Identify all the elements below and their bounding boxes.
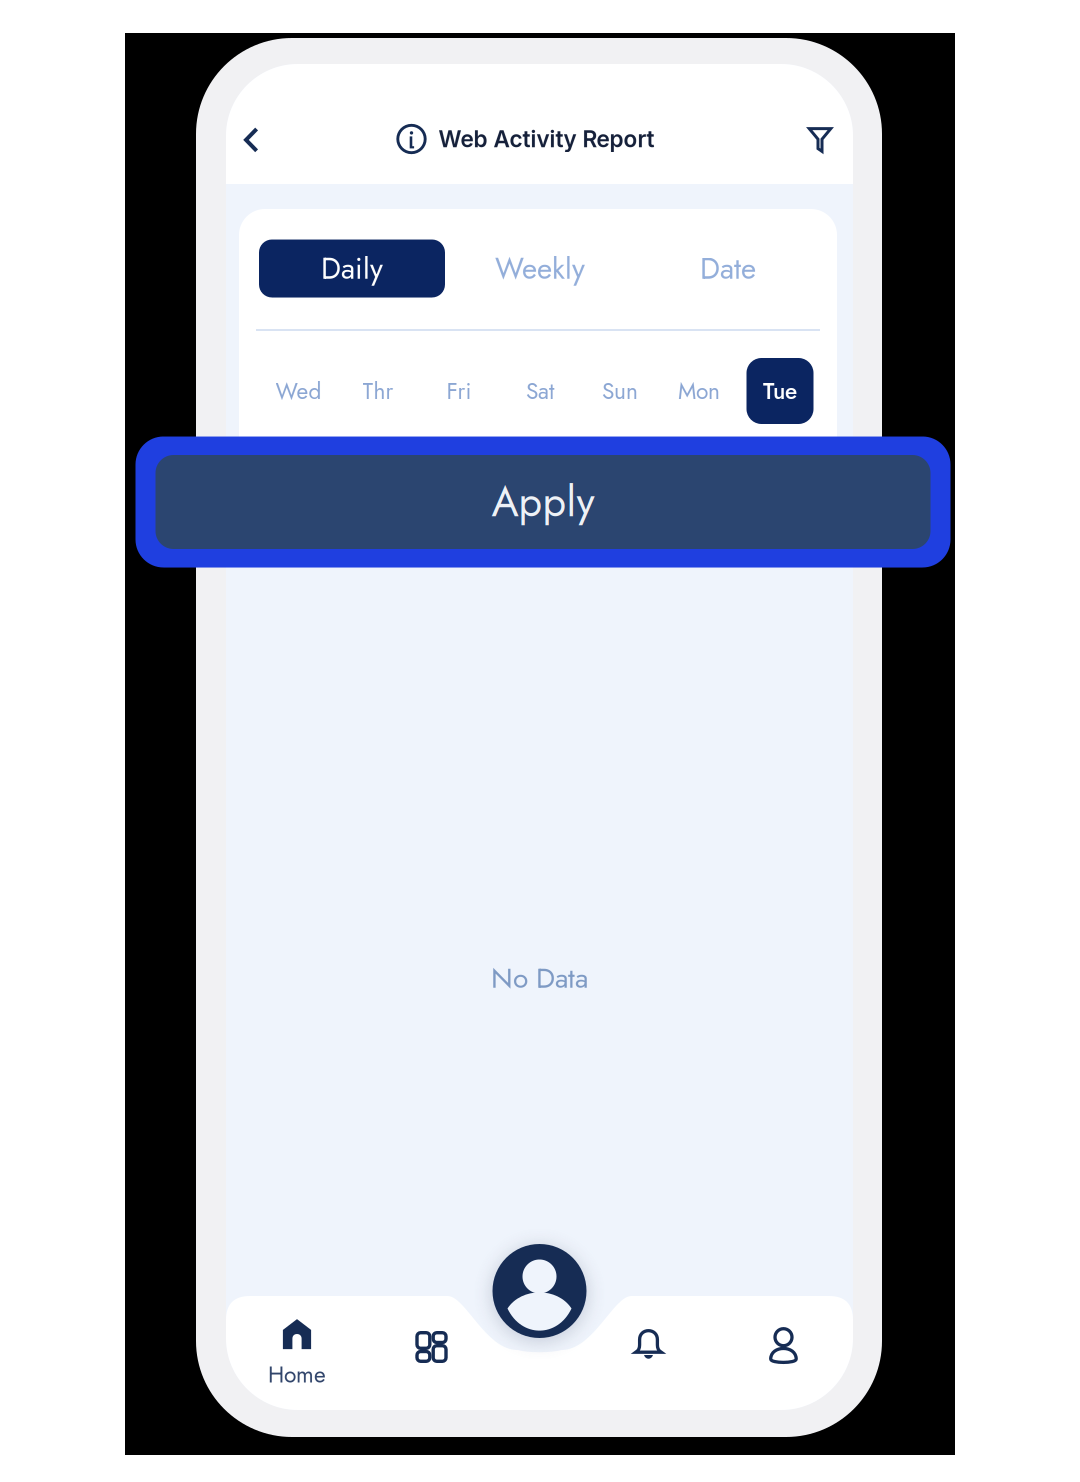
button[interactable]: Thr [341, 358, 415, 424]
button[interactable]: Back [220, 108, 282, 172]
staticText: Sun [602, 375, 638, 407]
button[interactable]: Account [492, 1244, 586, 1338]
staticText: Fri [446, 375, 471, 407]
staticText: Weekly [495, 247, 585, 290]
staticText: No Data [491, 958, 588, 998]
staticText: Date [700, 247, 756, 290]
staticText: Daily [321, 247, 383, 290]
staticText: Wed [275, 375, 321, 407]
button[interactable]: Weekly [465, 239, 615, 297]
button[interactable]: Home [242, 1307, 352, 1403]
button[interactable]: Mon [662, 358, 736, 424]
button[interactable]: Sat [503, 358, 577, 424]
button[interactable]: Date [663, 239, 793, 297]
button[interactable]: Filter [789, 108, 851, 172]
staticText: Apply [491, 472, 594, 532]
button[interactable]: Wed [261, 358, 335, 424]
staticText: Tue [763, 375, 797, 407]
button[interactable]: Sun [583, 358, 657, 424]
staticText: Sat [526, 375, 554, 407]
button[interactable]: Daily [259, 239, 445, 297]
staticText: Mon [678, 375, 720, 407]
button[interactable]: Apply [135, 436, 950, 567]
button[interactable]: Notifications [605, 1297, 691, 1385]
button[interactable]: Fri [422, 358, 496, 424]
staticText: Home [268, 1358, 326, 1391]
button[interactable]: Tue [746, 358, 813, 424]
button[interactable]: Profile [740, 1301, 826, 1389]
staticText: Thr [362, 375, 393, 407]
staticText: Web Activity Report [438, 125, 654, 153]
button[interactable]: Dashboard [388, 1303, 474, 1391]
